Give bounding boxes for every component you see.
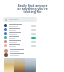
button[interactable]: [4, 48, 36, 53]
button[interactable]: Switch off: [31, 25, 36, 27]
button[interactable]: Switch off: [4, 39, 36, 44]
staticText: Easily find anyone or anything you're lo…: [17, 3, 48, 14]
button[interactable]: Switch off: [31, 45, 36, 47]
button[interactable]: Switch off: [4, 27, 36, 32]
button[interactable]: Switch off: [4, 23, 36, 28]
button[interactable]: [4, 58, 14, 72]
button[interactable]: Switch off: [4, 31, 36, 36]
button[interactable]: Switch on: [31, 37, 36, 39]
button[interactable]: Switch off: [4, 43, 36, 48]
button[interactable]: [4, 52, 36, 57]
button[interactable]: [14, 58, 25, 72]
button[interactable]: Switch off: [31, 33, 36, 35]
button[interactable]: Search: [3, 17, 37, 22]
button[interactable]: Switch off: [31, 29, 36, 31]
button[interactable]: [25, 58, 36, 72]
button[interactable]: Switch off: [31, 41, 36, 43]
button[interactable]: Switch on: [4, 35, 36, 40]
